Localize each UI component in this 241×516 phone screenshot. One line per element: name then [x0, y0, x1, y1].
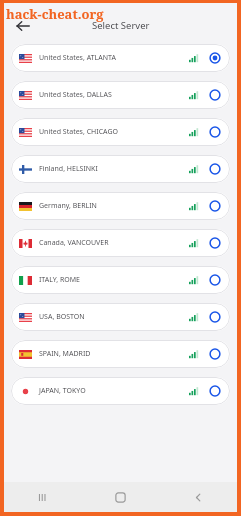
button[interactable]: United States, CHICAGO [11, 118, 230, 146]
staticText: Canada, VANCOUVER [39, 238, 189, 248]
button[interactable]: Recent apps [4, 482, 81, 512]
button[interactable]: USA, BOSTON [11, 303, 230, 331]
staticText: ITALY, ROME [39, 275, 189, 285]
staticText: United States, ATLANTA [39, 53, 189, 63]
button[interactable]: Canada, VANCOUVER [11, 229, 230, 257]
button[interactable]: Back [12, 15, 34, 37]
staticText: SPAIN, MADRID [39, 349, 189, 359]
staticText: JAPAN, TOKYO [39, 386, 189, 396]
button[interactable]: JAPAN, TOKYO [11, 377, 230, 405]
staticText: Select Server [92, 19, 150, 32]
staticText: hack-cheat.org [6, 5, 104, 23]
button[interactable]: SPAIN, MADRID [11, 340, 230, 368]
staticText: United States, CHICAGO [39, 127, 189, 137]
button[interactable]: Back [159, 482, 237, 512]
staticText: Finland, HELSINKI [39, 164, 189, 174]
button[interactable]: Home [81, 482, 159, 512]
button[interactable]: United States, DALLAS [11, 81, 230, 109]
staticText: United States, DALLAS [39, 90, 189, 100]
staticText: Germany, BERLIN [39, 201, 189, 211]
button[interactable]: United States, ATLANTA [11, 44, 230, 72]
button[interactable]: ITALY, ROME [11, 266, 230, 294]
button[interactable]: Finland, HELSINKI [11, 155, 230, 183]
staticText: USA, BOSTON [39, 312, 189, 322]
button[interactable]: Germany, BERLIN [11, 192, 230, 220]
